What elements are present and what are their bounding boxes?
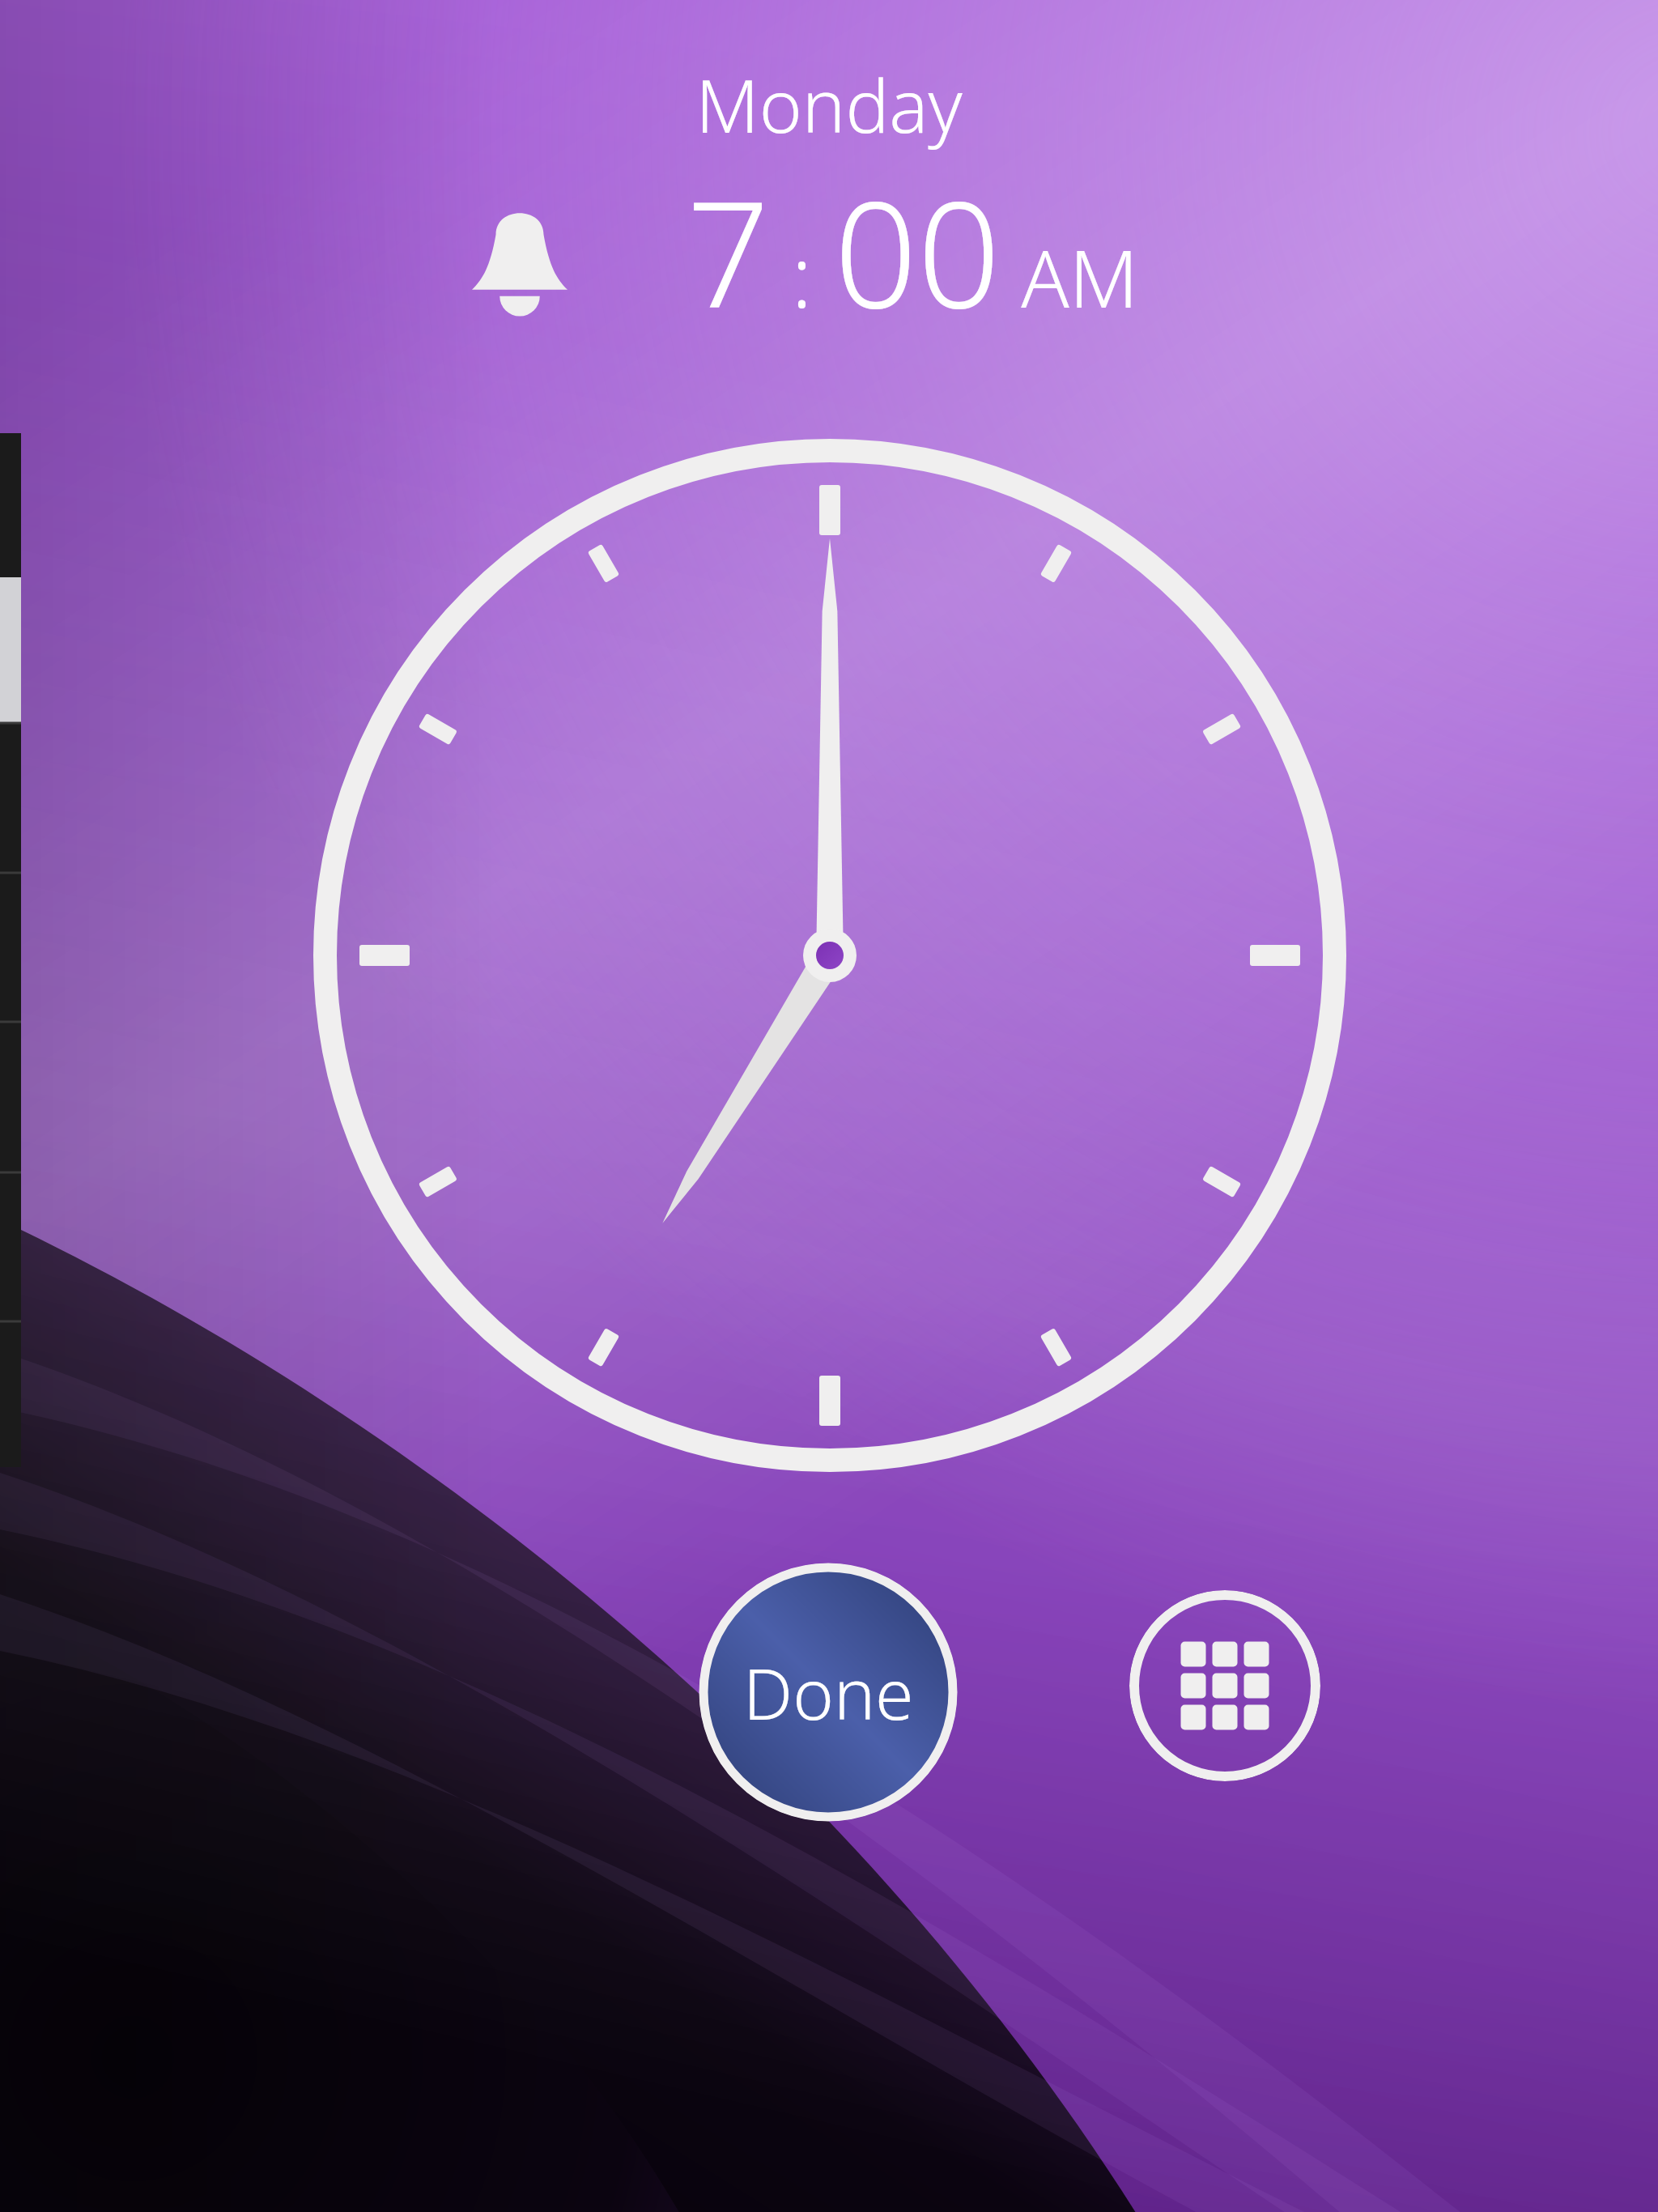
staticText: Monday	[695, 55, 963, 155]
staticText: 7 : 00 AM	[687, 152, 1139, 351]
button[interactable]: Done	[699, 1563, 958, 1822]
button[interactable]: Open apps	[1129, 1590, 1320, 1781]
staticText: Done	[743, 1645, 914, 1740]
